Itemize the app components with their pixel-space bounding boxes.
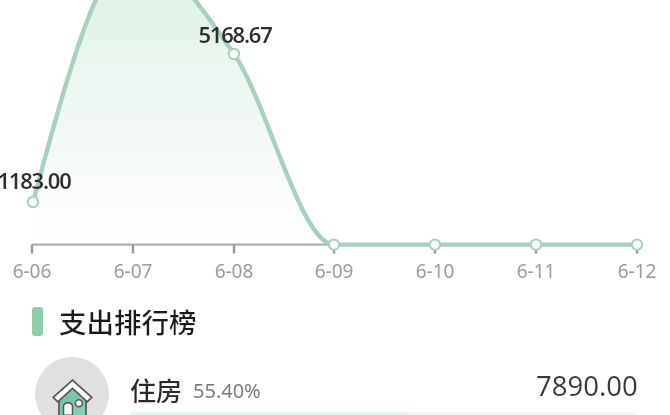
staticText: 55.40% <box>193 377 261 404</box>
staticText: 1183.00 <box>0 165 94 195</box>
button[interactable]: 住房 <box>0 352 670 415</box>
staticText: 支出排行榜 <box>59 301 197 341</box>
staticText: 7890.00 <box>536 367 638 404</box>
staticText: 住房 <box>130 371 183 409</box>
staticText: 6-09 <box>284 258 384 284</box>
staticText: 5168.67 <box>175 19 295 49</box>
button[interactable]: 支出排行榜 <box>32 301 197 341</box>
staticText: 6-12 <box>587 258 670 284</box>
staticText: 6-08 <box>184 258 284 284</box>
staticText: 6-07 <box>83 258 183 284</box>
staticText: 6-11 <box>486 258 586 284</box>
staticText: 6-06 <box>0 258 82 284</box>
staticText: 6-10 <box>385 258 485 284</box>
